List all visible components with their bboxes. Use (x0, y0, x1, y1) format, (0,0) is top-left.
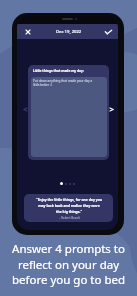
button[interactable]: Next prompt (106, 104, 117, 115)
staticText: - Robert Brault (59, 216, 80, 220)
button[interactable]: "Enjoy the little things, for one day yo… (24, 194, 113, 222)
button[interactable]: Put down anything that made your day a l… (31, 77, 107, 157)
button[interactable]: Save entry (98, 24, 118, 39)
staticText: Dec 19, 2022 (56, 29, 82, 35)
staticText: Answer 4 prompts to reflect on your day … (0, 241, 137, 287)
staticText: Little things that made my day: (33, 69, 84, 73)
staticText: Put down anything that made your day a l… (33, 79, 93, 87)
button[interactable]: Previous prompt (20, 104, 31, 115)
button[interactable]: Close (17, 24, 39, 39)
staticText: "Enjoy the little things, for one day yo… (36, 197, 102, 214)
